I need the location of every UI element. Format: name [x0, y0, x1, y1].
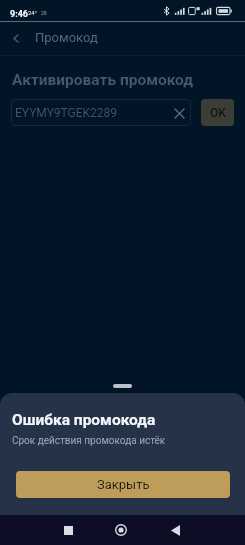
button[interactable]: Clear text	[167, 101, 191, 125]
button[interactable]: Home	[107, 516, 135, 544]
button[interactable]: Закрыть	[16, 471, 230, 498]
button[interactable]: OK	[201, 99, 234, 126]
button[interactable]: Recent apps	[54, 516, 82, 544]
button[interactable]: Back	[161, 516, 189, 544]
staticText: OK	[210, 106, 226, 120]
button[interactable]: EYYMY9TGEK2289	[11, 99, 191, 126]
staticText: Промокод	[35, 30, 98, 45]
staticText: 24°	[28, 9, 37, 16]
staticText: 28	[41, 10, 47, 16]
staticText: Срок действия промокода истёк	[12, 435, 166, 447]
staticText: Ошибка промокода	[12, 411, 156, 429]
button[interactable]: Back	[4, 26, 28, 50]
staticText: EYYMY9TGEK2289	[15, 106, 118, 120]
staticText: Закрыть	[97, 477, 150, 492]
staticText: Активировать промокод	[12, 71, 194, 89]
staticText: 9:46	[10, 9, 29, 20]
